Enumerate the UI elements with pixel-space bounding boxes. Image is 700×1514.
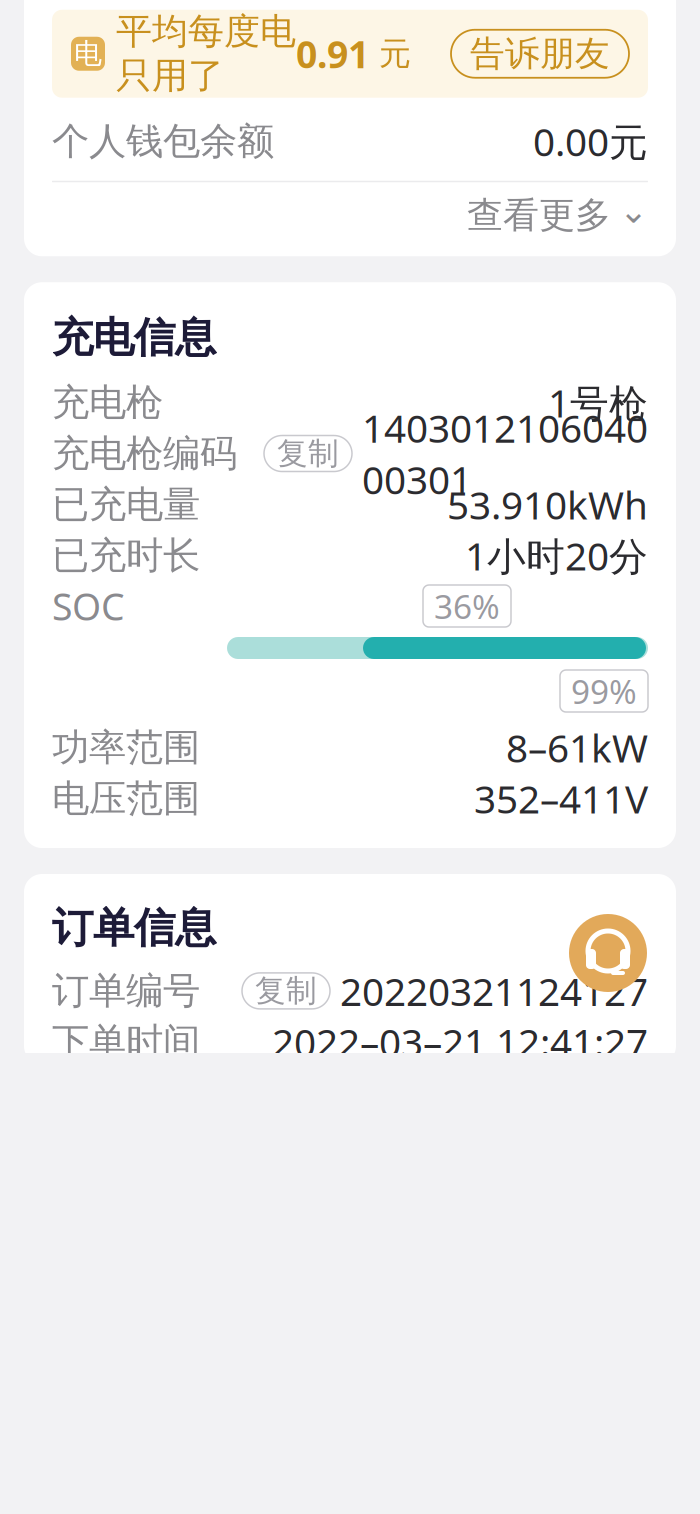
staticText: 8–61kW xyxy=(506,722,648,773)
button[interactable]: Customer service xyxy=(560,905,656,1001)
staticText: 2022–03–21 12:41:27 xyxy=(272,1016,648,1067)
button[interactable]: 复制 xyxy=(242,973,330,1009)
button[interactable]: 告诉朋友 xyxy=(451,30,629,78)
staticText: 352–411V xyxy=(474,773,648,824)
button[interactable]: 查看更多 xyxy=(52,182,648,248)
staticText: 电压范围 xyxy=(52,776,200,821)
staticText: ⌄ xyxy=(619,191,648,230)
staticText: 电 xyxy=(74,36,102,71)
staticText: 复制 xyxy=(255,972,317,1010)
staticText: 订单编号 xyxy=(52,968,200,1014)
staticText: SOC xyxy=(52,581,125,631)
staticText: 复制 xyxy=(277,435,339,472)
staticText: 0.00元 xyxy=(533,116,648,167)
staticText: 已充时长 xyxy=(52,533,200,578)
staticText: 140301210604000301 xyxy=(362,402,648,505)
staticText: 99% xyxy=(571,669,637,713)
staticText: 平均每度电只用了 xyxy=(116,9,296,98)
staticText: 充电枪 xyxy=(52,380,163,425)
staticText: 告诉朋友 xyxy=(470,32,610,75)
staticText: 订单信息 xyxy=(52,903,216,953)
staticText: 1号枪 xyxy=(548,377,648,428)
button[interactable]: 复制 xyxy=(264,435,352,471)
staticText: 下单时间 xyxy=(52,1019,200,1065)
staticText: 20220321124127 xyxy=(340,965,648,1016)
staticText: 功率范围 xyxy=(52,725,200,770)
staticText: 36% xyxy=(434,584,500,628)
staticText: 查看更多 xyxy=(467,193,611,237)
staticText: 1小时20分 xyxy=(465,530,648,581)
staticText: 53.910kWh xyxy=(447,479,648,530)
staticText: 元 xyxy=(369,34,411,73)
staticText: 充电枪编码 xyxy=(52,431,237,476)
staticText: 0.91 xyxy=(296,29,369,79)
staticText: 充电信息 xyxy=(52,312,216,363)
staticText: 已充电量 xyxy=(52,482,200,527)
staticText: 个人钱包余额 xyxy=(52,118,274,164)
